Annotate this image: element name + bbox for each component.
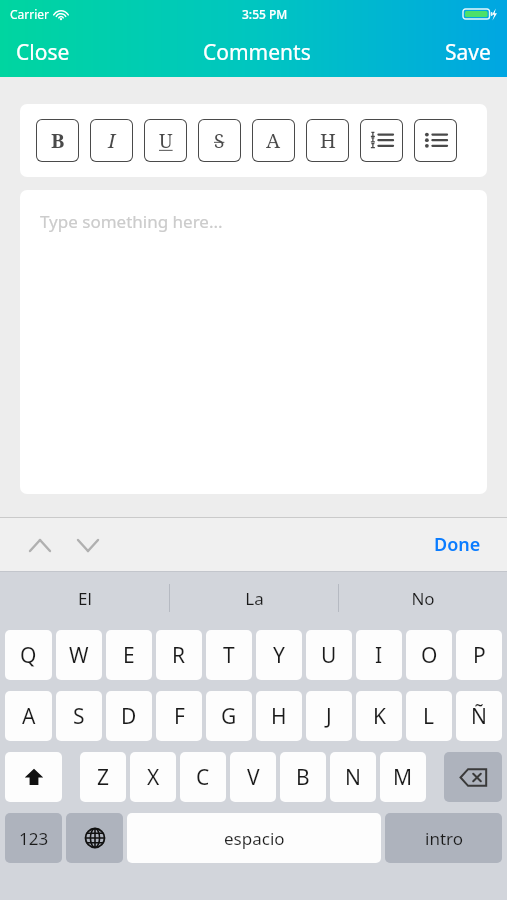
button[interactable]: D [106, 691, 152, 741]
staticText: Save [445, 38, 491, 67]
staticText: B [51, 127, 65, 154]
button[interactable]: Z [80, 752, 126, 802]
button[interactable]: B [280, 752, 326, 802]
staticText: intro [425, 827, 463, 850]
button[interactable]: J [306, 691, 352, 741]
button[interactable]: G [206, 691, 252, 741]
staticText: 3:55 PM [242, 6, 288, 22]
button[interactable]: K [356, 691, 402, 741]
button[interactable]: Next field [68, 525, 108, 565]
staticText: A [22, 702, 36, 731]
staticText: O [421, 641, 438, 670]
staticText: N [345, 763, 361, 792]
staticText: espacio [224, 827, 285, 850]
staticText: G [221, 702, 237, 731]
button[interactable]: O [406, 630, 452, 680]
staticText: Comments [203, 38, 311, 67]
staticText: El [78, 587, 92, 610]
button[interactable]: Previous field [20, 525, 60, 565]
button[interactable]: E [106, 630, 152, 680]
button[interactable]: B [36, 119, 79, 162]
button[interactable]: No [339, 572, 507, 624]
staticText: B [296, 763, 310, 792]
staticText: A [266, 127, 281, 154]
staticText: Carrier [10, 6, 50, 22]
button[interactable]: U [306, 630, 352, 680]
button[interactable]: Shift [5, 752, 62, 802]
staticText: V [247, 763, 260, 792]
button[interactable]: espacio [127, 813, 381, 863]
staticText: U [321, 641, 337, 670]
staticText: Ñ [471, 702, 487, 731]
staticText: 123 [19, 827, 49, 850]
button[interactable]: Ñ [456, 691, 502, 741]
button[interactable]: C [180, 752, 226, 802]
button[interactable]: Change keyboard [66, 813, 123, 863]
staticText: F [174, 702, 185, 731]
button[interactable]: H [256, 691, 302, 741]
staticText: Type something here... [40, 210, 223, 233]
button[interactable]: Strikethrough [198, 119, 241, 162]
staticText: M [393, 763, 413, 792]
staticText: H [271, 702, 287, 731]
staticText: Q [20, 641, 37, 670]
staticText: D [121, 702, 137, 731]
staticText: X [147, 763, 160, 792]
staticText: U [159, 128, 173, 154]
button[interactable]: F [156, 691, 202, 741]
button[interactable]: La [170, 572, 338, 624]
button[interactable]: El [0, 572, 169, 624]
staticText: La [245, 587, 264, 610]
staticText: I [108, 127, 116, 154]
button[interactable]: Bulleted list [414, 119, 457, 162]
button[interactable]: V [230, 752, 276, 802]
staticText: E [123, 641, 135, 670]
button[interactable]: Y [256, 630, 302, 680]
staticText: P [473, 641, 486, 670]
button[interactable]: I [356, 630, 402, 680]
staticText: Close [16, 38, 70, 67]
button[interactable]: W [56, 630, 102, 680]
button[interactable]: Italic [90, 119, 133, 162]
button[interactable]: Font [252, 119, 295, 162]
button[interactable]: M [380, 752, 426, 802]
staticText: S [214, 128, 225, 154]
staticText: Z [97, 763, 110, 792]
button[interactable]: A [5, 691, 52, 741]
button[interactable]: Close [14, 34, 72, 71]
button[interactable]: S [56, 691, 102, 741]
staticText: T [223, 641, 235, 670]
button[interactable]: L [406, 691, 452, 741]
staticText: S [73, 702, 85, 731]
button[interactable]: Done [428, 526, 487, 563]
button[interactable]: Type something here... [20, 190, 487, 494]
staticText: C [196, 763, 210, 792]
staticText: Y [273, 641, 285, 670]
button[interactable]: Save [443, 34, 493, 71]
button[interactable]: 123 [5, 813, 62, 863]
button[interactable]: Q [5, 630, 52, 680]
button[interactable]: R [156, 630, 202, 680]
staticText: K [373, 702, 386, 731]
staticText: No [411, 587, 435, 610]
staticText: L [423, 702, 435, 731]
button[interactable]: Numbered list [360, 119, 403, 162]
button[interactable]: X [130, 752, 176, 802]
button[interactable]: T [206, 630, 252, 680]
button[interactable]: intro [385, 813, 502, 863]
staticText: H [320, 127, 336, 154]
button[interactable]: N [330, 752, 376, 802]
staticText: Done [434, 532, 481, 557]
button[interactable]: P [456, 630, 502, 680]
staticText: W [69, 641, 89, 670]
button[interactable]: Underline [144, 119, 187, 162]
button[interactable]: Backspace [444, 752, 502, 802]
staticText: R [172, 641, 186, 670]
staticText: I [375, 641, 383, 670]
staticText: J [326, 702, 332, 731]
button[interactable]: Heading [306, 119, 349, 162]
